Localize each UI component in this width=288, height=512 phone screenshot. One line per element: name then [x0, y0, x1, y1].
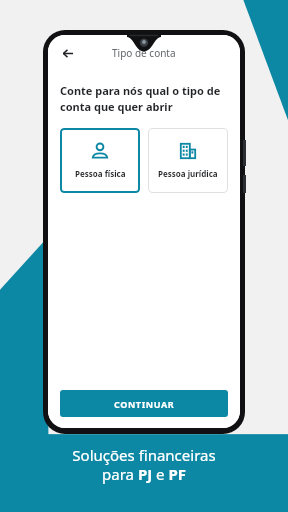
button[interactable]: Pessoa física — [60, 128, 140, 193]
button[interactable]: Pessoa jurídica — [148, 128, 228, 193]
staticText: Soluções financeiras para PJ e PF — [0, 445, 288, 484]
button[interactable]: CONTINUAR — [60, 390, 228, 417]
button[interactable]: Voltar — [56, 42, 78, 64]
staticText: Tipo de conta — [112, 46, 176, 60]
staticText: Conte para nós qual o tipo de conta que … — [60, 83, 228, 114]
staticText: CONTINUAR — [114, 398, 175, 410]
staticText: Pessoa física — [75, 168, 126, 179]
staticText: Pessoa jurídica — [158, 168, 218, 179]
